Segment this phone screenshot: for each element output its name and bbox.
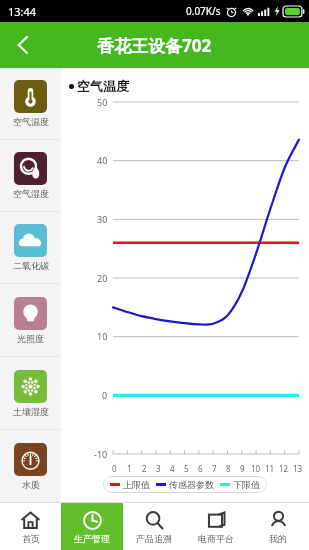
button[interactable]: 电商平台	[185, 503, 247, 550]
staticText: 3	[156, 463, 161, 474]
staticText: 传感器参数	[169, 479, 214, 490]
staticText: 下限值	[233, 479, 260, 490]
staticText: 12	[279, 463, 289, 474]
button[interactable]: 产品追溯	[123, 503, 185, 550]
staticText: 50	[97, 96, 108, 108]
staticText: 7	[212, 463, 217, 474]
staticText: 10	[251, 463, 261, 474]
staticText: 光照度	[17, 333, 44, 344]
staticText: 我的	[269, 533, 287, 544]
staticText: 0	[112, 463, 117, 474]
button[interactable]: Back	[0, 22, 46, 68]
button[interactable]: 我的	[247, 503, 309, 550]
staticText: 13	[293, 463, 303, 474]
staticText: 30	[97, 213, 108, 225]
staticText: 11	[265, 463, 275, 474]
staticText: 首页	[22, 533, 40, 544]
staticText: 0	[102, 389, 108, 401]
staticText: 13:44	[8, 4, 37, 19]
staticText: 8	[226, 463, 231, 474]
staticText: 10	[97, 330, 108, 342]
staticText: 9	[240, 463, 245, 474]
staticText: 40	[97, 154, 108, 166]
button[interactable]: 首页	[0, 503, 61, 550]
staticText: 产品追溯	[136, 533, 172, 544]
staticText: 空气温度	[77, 78, 129, 94]
staticText: 上限值	[123, 479, 150, 490]
button[interactable]: 空气温度	[0, 68, 61, 139]
button[interactable]: 土壤湿度	[0, 357, 61, 429]
staticText: 香花王设备702	[97, 34, 212, 57]
staticText: 水质	[22, 479, 40, 490]
staticText: 空气湿度	[13, 188, 49, 199]
staticText: 土壤湿度	[13, 406, 49, 417]
staticText: 生产管理	[74, 533, 110, 544]
staticText: 20	[97, 272, 108, 284]
staticText: -10	[94, 448, 108, 460]
staticText: 1	[127, 463, 132, 474]
button[interactable]: 二氧化碳	[0, 212, 61, 283]
staticText: 电商平台	[198, 533, 234, 544]
staticText: 0.07K/s	[186, 4, 221, 18]
button[interactable]: 光照度	[0, 284, 61, 356]
staticText: 2	[142, 463, 147, 474]
staticText: 6	[198, 463, 203, 474]
staticText: 4	[170, 463, 175, 474]
button[interactable]: 生产管理	[61, 503, 123, 550]
staticText: 空气温度	[13, 116, 49, 127]
staticText: 5	[184, 463, 189, 474]
button[interactable]: 水质	[0, 430, 61, 502]
staticText: 二氧化碳	[13, 260, 49, 271]
button[interactable]: 空气湿度	[0, 140, 61, 211]
